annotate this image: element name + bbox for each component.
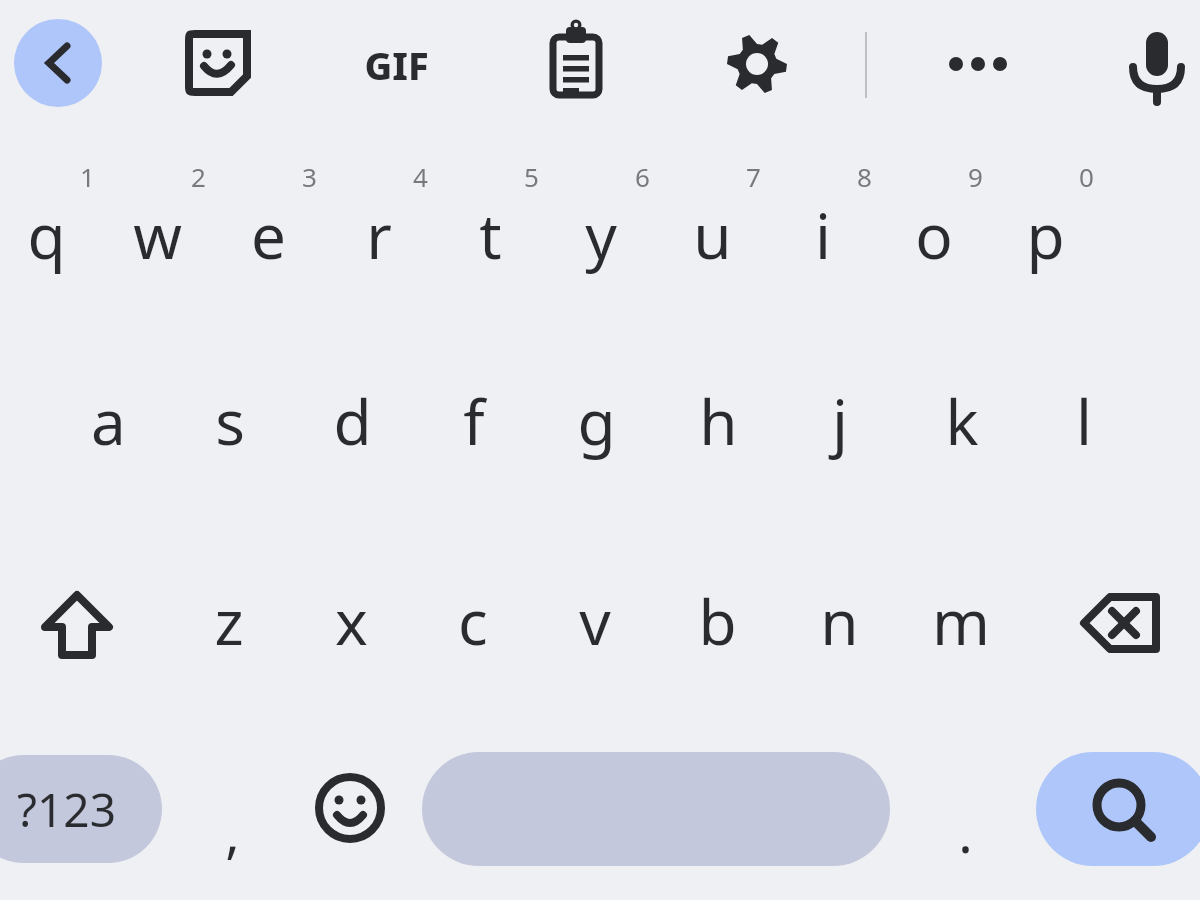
button[interactable]: y bbox=[546, 175, 656, 295]
button[interactable]: o bbox=[879, 175, 989, 295]
staticText: m bbox=[932, 579, 990, 663]
button[interactable]: Settings bbox=[713, 20, 801, 108]
button[interactable]: 2 bbox=[167, 150, 229, 202]
button[interactable]: w bbox=[102, 175, 212, 295]
button[interactable]: a bbox=[51, 362, 165, 480]
staticText: g bbox=[577, 379, 616, 463]
staticText: 3 bbox=[302, 159, 317, 194]
staticText: j bbox=[832, 379, 848, 463]
staticText: 4 bbox=[413, 159, 428, 194]
staticText: 0 bbox=[1079, 159, 1094, 194]
button[interactable]: Clipboard bbox=[532, 19, 620, 107]
button[interactable]: Space bbox=[422, 752, 890, 866]
staticText: n bbox=[820, 579, 859, 663]
button[interactable]: u bbox=[657, 175, 767, 295]
button[interactable]: 1 bbox=[56, 150, 118, 202]
button[interactable]: Stickers bbox=[170, 19, 266, 107]
staticText: y bbox=[585, 193, 617, 277]
button[interactable]: 0 bbox=[1055, 150, 1117, 202]
staticText: x bbox=[335, 579, 368, 663]
staticText: k bbox=[945, 379, 979, 463]
staticText: , bbox=[225, 795, 240, 869]
button[interactable]: p bbox=[990, 175, 1100, 295]
button[interactable]: 4 bbox=[389, 150, 451, 202]
button[interactable]: 7 bbox=[722, 150, 784, 202]
staticText: 8 bbox=[857, 159, 872, 194]
button[interactable]: i bbox=[768, 175, 878, 295]
button[interactable]: s bbox=[173, 362, 287, 480]
staticText: c bbox=[458, 579, 488, 663]
staticText: 1 bbox=[80, 159, 95, 194]
button[interactable]: t bbox=[435, 175, 545, 295]
button[interactable]: 9 bbox=[944, 150, 1006, 202]
staticText: v bbox=[579, 579, 611, 663]
button[interactable]: Shift bbox=[22, 565, 132, 681]
staticText: a bbox=[91, 379, 126, 463]
button[interactable]: v bbox=[538, 562, 652, 680]
staticText: e bbox=[251, 193, 286, 277]
staticText: f bbox=[463, 379, 485, 463]
staticText: t bbox=[479, 193, 502, 277]
staticText: o bbox=[915, 193, 953, 277]
button[interactable]: m bbox=[904, 562, 1018, 680]
button[interactable]: n bbox=[782, 562, 896, 680]
staticText: 6 bbox=[635, 159, 650, 194]
button[interactable]: Voice input bbox=[1113, 20, 1200, 108]
button[interactable]: GIF bbox=[340, 22, 452, 108]
staticText: r bbox=[366, 193, 392, 277]
button[interactable]: g bbox=[539, 362, 653, 480]
staticText: 2 bbox=[191, 159, 206, 194]
button[interactable]: l bbox=[1027, 362, 1141, 480]
staticText: GIF bbox=[364, 39, 429, 91]
staticText: l bbox=[1076, 379, 1092, 463]
staticText: s bbox=[215, 379, 245, 463]
button[interactable]: c bbox=[416, 562, 530, 680]
staticText: i bbox=[815, 193, 831, 277]
button[interactable]: More options bbox=[934, 20, 1022, 108]
button[interactable]: , bbox=[182, 780, 282, 884]
button[interactable]: 6 bbox=[611, 150, 673, 202]
staticText: . bbox=[958, 795, 973, 869]
staticText: 7 bbox=[746, 159, 761, 194]
button[interactable]: k bbox=[905, 362, 1019, 480]
button[interactable]: e bbox=[213, 175, 323, 295]
staticText: w bbox=[133, 193, 182, 277]
staticText: 5 bbox=[524, 159, 539, 194]
staticText: h bbox=[699, 379, 738, 463]
button[interactable]: Backspace bbox=[1066, 565, 1178, 681]
button[interactable]: ?123 bbox=[0, 755, 162, 863]
staticText: p bbox=[1026, 193, 1065, 277]
button[interactable]: Emoji bbox=[300, 758, 400, 858]
staticText: d bbox=[333, 379, 372, 463]
staticText: u bbox=[693, 193, 732, 277]
staticText: b bbox=[698, 579, 737, 663]
button[interactable]: j bbox=[783, 362, 897, 480]
button[interactable]: 3 bbox=[278, 150, 340, 202]
button[interactable]: f bbox=[417, 362, 531, 480]
button[interactable]: x bbox=[294, 562, 408, 680]
button[interactable]: h bbox=[661, 362, 775, 480]
button[interactable]: r bbox=[324, 175, 434, 295]
button[interactable]: q bbox=[0, 175, 101, 295]
button[interactable]: . bbox=[915, 782, 1015, 882]
button[interactable]: 8 bbox=[833, 150, 895, 202]
button[interactable]: Back bbox=[14, 19, 102, 107]
staticText: ?123 bbox=[17, 778, 116, 841]
button[interactable]: d bbox=[295, 362, 409, 480]
button[interactable]: Search bbox=[1036, 752, 1200, 866]
button[interactable]: 5 bbox=[500, 150, 562, 202]
button[interactable]: z bbox=[172, 562, 286, 680]
staticText: z bbox=[214, 579, 244, 663]
staticText: 9 bbox=[968, 159, 983, 194]
staticText: q bbox=[27, 193, 66, 277]
button[interactable]: b bbox=[660, 562, 774, 680]
